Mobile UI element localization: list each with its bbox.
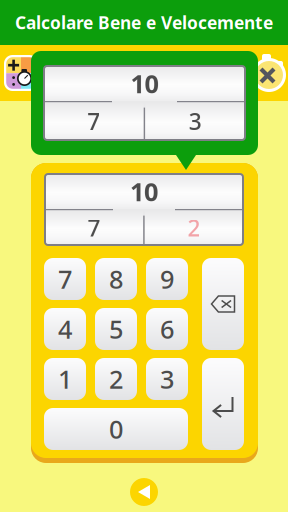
staticText: 7 xyxy=(87,106,100,136)
button[interactable]: Invio xyxy=(202,358,244,450)
staticText: 2 xyxy=(187,213,200,243)
staticText: 5 xyxy=(109,312,123,346)
button[interactable]: 0 xyxy=(44,408,188,450)
button[interactable]: 9 xyxy=(146,258,188,300)
button[interactable]: Calcolare Bene e Velocemente xyxy=(4,55,38,91)
staticText: 0 xyxy=(109,412,123,446)
staticText: 7 xyxy=(88,213,101,243)
staticText: 1 xyxy=(58,362,72,396)
staticText: 6 xyxy=(160,312,174,346)
button[interactable]: 6 xyxy=(146,308,188,350)
staticText: 9 xyxy=(160,262,174,296)
staticText: 4 xyxy=(58,312,72,346)
staticText: 10 xyxy=(130,67,158,100)
button[interactable]: 2 xyxy=(95,358,137,400)
button[interactable]: Chiudi xyxy=(246,50,288,96)
staticText: 3 xyxy=(160,362,174,396)
button[interactable]: 7 xyxy=(44,258,86,300)
staticText: 8 xyxy=(109,262,123,296)
staticText: 7 xyxy=(58,262,72,296)
staticText: Calcolare Bene e Velocemente xyxy=(15,11,273,34)
staticText: 10 xyxy=(130,175,158,208)
staticText: 3 xyxy=(189,106,202,136)
button[interactable]: 3 xyxy=(146,358,188,400)
staticText: 2 xyxy=(109,362,123,396)
button[interactable]: 1 xyxy=(44,358,86,400)
button[interactable]: 5 xyxy=(95,308,137,350)
button[interactable]: 4 xyxy=(44,308,86,350)
button[interactable]: 8 xyxy=(95,258,137,300)
button[interactable]: Indietro xyxy=(130,478,158,506)
button[interactable]: Cancella xyxy=(202,258,244,350)
